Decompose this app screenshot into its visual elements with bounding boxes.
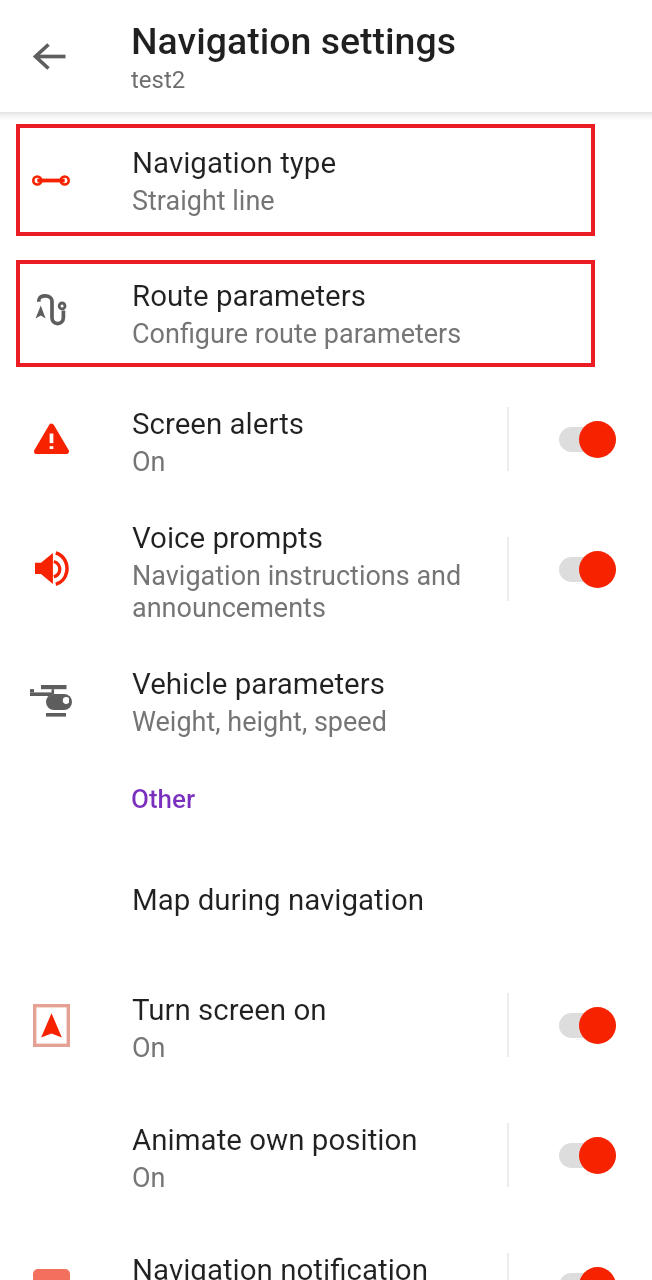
button[interactable]: Turn screen on (0, 960, 652, 1090)
button[interactable]: Toggle Voice prompts (509, 504, 652, 634)
button[interactable]: Back (14, 20, 87, 93)
button[interactable]: Navigation type (16, 124, 595, 236)
staticText: On (132, 446, 166, 478)
staticText: On (132, 1162, 166, 1194)
button[interactable]: Toggle Navigation notification (509, 1220, 652, 1280)
staticText: Navigation instructions and announcement… (132, 560, 462, 623)
button[interactable]: Screen alerts (0, 374, 652, 504)
button[interactable]: Voice prompts (0, 504, 652, 634)
staticText: test2 (131, 66, 186, 94)
button[interactable]: Route parameters (16, 260, 595, 367)
staticText: Navigation type (132, 146, 337, 181)
staticText: Animate own position (132, 1123, 418, 1158)
staticText: Vehicle parameters (132, 667, 385, 702)
staticText: Map during navigation (132, 883, 425, 918)
staticText: Navigation notification (132, 1253, 428, 1280)
staticText: Other (131, 784, 196, 814)
staticText: Weight, height, speed (132, 706, 387, 738)
staticText: Straight line (132, 185, 275, 217)
staticText: Route parameters (132, 279, 366, 314)
staticText: Screen alerts (132, 407, 305, 442)
staticText: Navigation settings (131, 19, 457, 63)
button[interactable]: Toggle Screen alerts (509, 374, 652, 504)
staticText: On (132, 1032, 166, 1064)
button[interactable]: Toggle Animate own position (509, 1090, 652, 1220)
button[interactable]: Vehicle parameters (0, 634, 652, 764)
button[interactable]: Animate own position (0, 1090, 652, 1220)
button[interactable]: Map during navigation (0, 834, 652, 960)
button[interactable]: Toggle Turn screen on (509, 960, 652, 1090)
staticText: Configure route parameters (132, 318, 462, 350)
staticText: Turn screen on (132, 993, 327, 1028)
staticText: Voice prompts (132, 521, 323, 556)
button[interactable]: Navigation notification (0, 1220, 652, 1280)
